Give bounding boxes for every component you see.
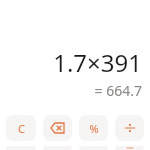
button[interactable]: Percent — [79, 115, 108, 141]
staticText: = 664.7 — [94, 81, 142, 100]
staticText: % — [89, 121, 99, 136]
button[interactable]: Multiply — [115, 146, 144, 150]
button[interactable]: Divide — [115, 115, 144, 141]
staticText: C — [18, 121, 25, 136]
staticText: 1.7×391 — [53, 46, 142, 79]
button[interactable]: Backspace — [43, 115, 72, 141]
button[interactable]: Clear — [6, 115, 36, 141]
